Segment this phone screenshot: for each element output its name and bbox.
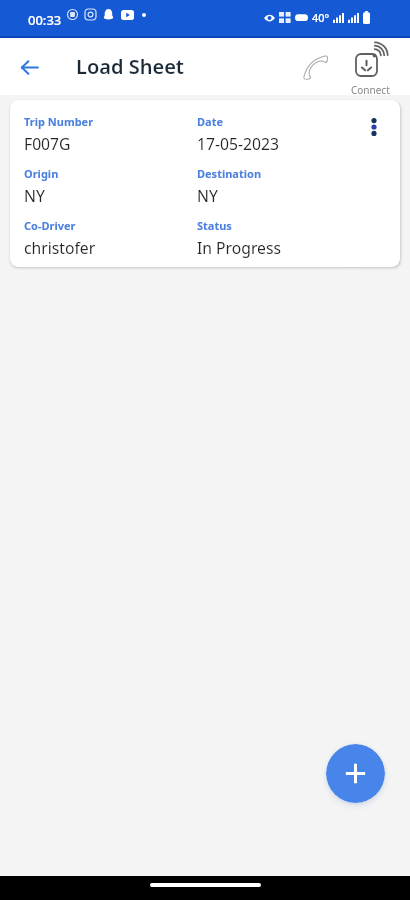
staticText: 17-05-2023 [197,133,279,154]
button[interactable]: More options [358,111,390,143]
staticText: F007G [24,133,71,154]
staticText: In Progress [197,237,281,258]
staticText: Destination [197,166,262,181]
staticText: NY [24,185,45,206]
button[interactable]: Trip Number [10,100,400,267]
staticText: Status [197,218,232,233]
staticText: Co-Driver [24,218,76,233]
button[interactable]: Connect [344,38,402,95]
staticText: Trip Number [24,114,94,129]
button[interactable]: Add [326,744,385,803]
button[interactable]: Call [295,47,335,87]
staticText: christofer [24,237,96,258]
staticText: NY [197,185,218,206]
staticText: Date [197,114,223,129]
button[interactable]: Back [8,46,50,88]
staticText: 00:33 [28,11,62,29]
staticText: Origin [24,166,59,181]
staticText: Connect [351,83,390,97]
staticText: 40° [312,10,330,25]
staticText: Load Sheet [76,53,184,80]
